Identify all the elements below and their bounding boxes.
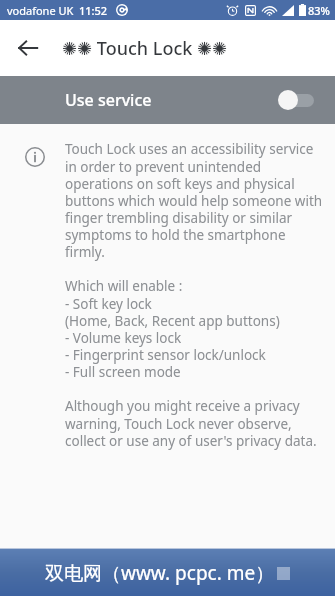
button[interactable]: Use service (0, 76, 335, 124)
staticText: Which will enable : - Soft key lock (Hom… (65, 277, 280, 381)
staticText: vodafone UK (7, 3, 74, 18)
staticText: 11:52 (79, 3, 108, 18)
button[interactable]: Information (22, 144, 48, 170)
staticText: 双电网（www. pcpc. me） (45, 560, 275, 586)
staticText: Although you might receive a privacy war… (65, 397, 323, 450)
button[interactable]: Use service toggle, off (278, 88, 318, 112)
staticText: ✺✺ Touch Lock ✺✺ (62, 36, 228, 61)
staticText: Touch Lock uses an accessibility service… (65, 140, 323, 261)
button[interactable]: Back (8, 28, 48, 68)
staticText: Use service (65, 89, 152, 111)
staticText: 83% (308, 3, 330, 18)
